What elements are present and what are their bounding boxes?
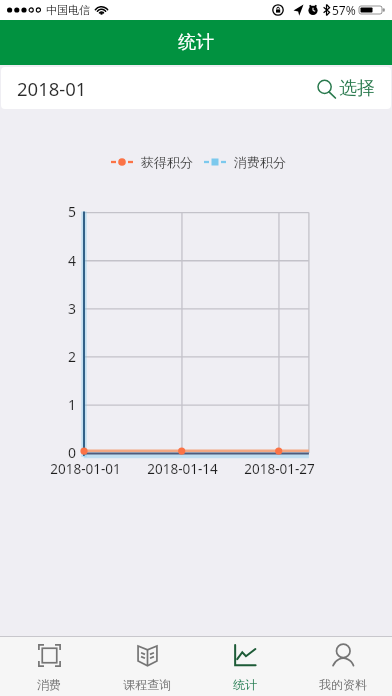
staticText: 2018-01	[17, 76, 87, 101]
button[interactable]: 消费	[0, 637, 98, 696]
staticText: 2018-01-14	[147, 460, 218, 478]
staticText: 选择	[339, 77, 375, 100]
staticText: 统计	[178, 31, 214, 54]
staticText: 消费积分	[234, 154, 286, 170]
staticText: 3	[67, 299, 76, 318]
staticText: 2	[67, 347, 76, 366]
staticText: 我的资料	[319, 677, 367, 692]
staticText: 课程查询	[123, 677, 171, 692]
button[interactable]: 课程查询	[98, 637, 196, 696]
staticText: 统计	[233, 677, 257, 692]
button[interactable]: 选择	[315, 73, 377, 104]
staticText: 中国电信	[46, 3, 90, 17]
staticText: 2018-01-01	[50, 460, 121, 478]
staticText: 4	[67, 251, 76, 270]
button[interactable]: 统计	[196, 637, 294, 696]
staticText: 2018-01-27	[244, 460, 315, 478]
staticText: 5	[67, 202, 76, 221]
staticText: 1	[67, 395, 76, 414]
staticText: 57%	[332, 2, 356, 18]
staticText: 消费	[37, 677, 61, 692]
staticText: 0	[67, 443, 76, 462]
button[interactable]: 我的资料	[294, 637, 392, 696]
staticText: 获得积分	[141, 154, 193, 170]
